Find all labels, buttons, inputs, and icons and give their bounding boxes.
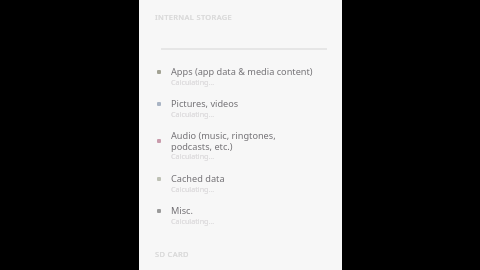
- staticText: Apps (app data & media content): [171, 65, 313, 78]
- button[interactable]: Audio (music, ringtones, podcasts, etc.): [139, 129, 342, 170]
- button[interactable]: Apps (app data & media content): [139, 65, 342, 95]
- staticText: Calculating…: [171, 151, 215, 161]
- staticText: INTERNAL STORAGE: [155, 12, 233, 22]
- staticText: Misc.: [171, 204, 193, 217]
- staticText: Calculating…: [171, 109, 215, 119]
- staticText: Calculating…: [171, 216, 215, 226]
- button[interactable]: Cached data: [139, 172, 342, 202]
- button[interactable]: Pictures, videos: [139, 97, 342, 127]
- staticText: Pictures, videos: [171, 97, 239, 110]
- staticText: Audio (music, ringtones, podcasts, etc.): [171, 129, 276, 152]
- staticText: SD CARD: [155, 249, 189, 259]
- staticText: Calculating…: [171, 77, 215, 87]
- staticText: Calculating…: [171, 184, 215, 194]
- button[interactable]: Misc.: [139, 204, 342, 234]
- staticText: Cached data: [171, 172, 225, 185]
